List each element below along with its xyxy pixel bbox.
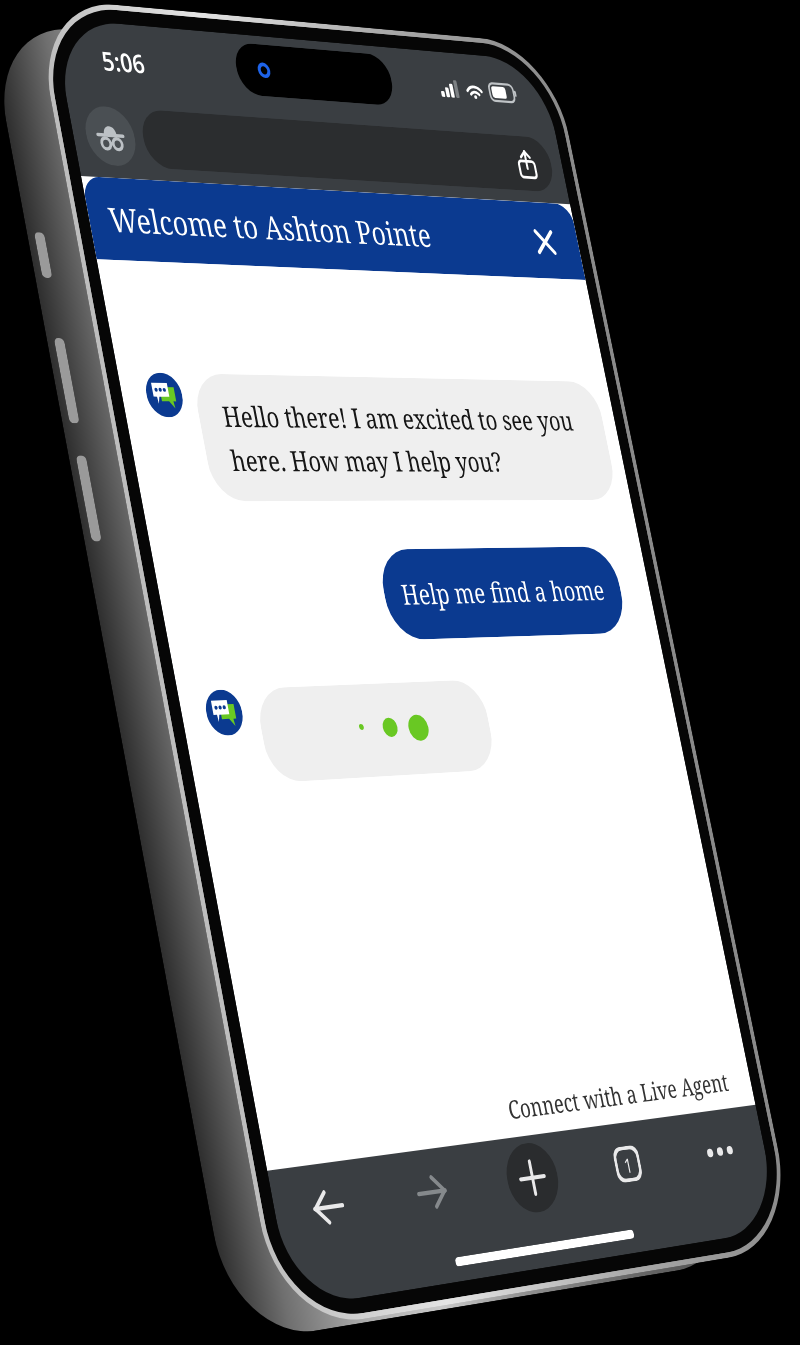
staticText: Connect with a Live Agent xyxy=(505,1064,732,1127)
staticText: 5:06 xyxy=(98,42,148,80)
button[interactable]: Help me find a home xyxy=(376,546,629,640)
button[interactable]: Tabs xyxy=(597,1127,658,1201)
button[interactable]: Connect with a Live Agent xyxy=(258,1064,732,1159)
button[interactable]: Welcome to Ashton Pointe xyxy=(81,176,586,280)
staticText: 1 xyxy=(621,1151,636,1179)
button[interactable]: Share xyxy=(138,109,557,192)
staticText: Welcome to Ashton Pointe xyxy=(105,196,436,257)
staticText: Help me find a home xyxy=(398,571,608,614)
button[interactable]: New tab xyxy=(501,1140,564,1216)
button[interactable]: Private browsing xyxy=(80,105,140,167)
button[interactable]: Close xyxy=(526,221,563,261)
staticText: Hello there! I am excited to see you her… xyxy=(219,397,594,478)
button[interactable]: Forward xyxy=(399,1153,465,1231)
button[interactable]: Back xyxy=(295,1167,362,1247)
button[interactable]: Share xyxy=(512,148,541,180)
button[interactable]: More xyxy=(689,1115,749,1187)
